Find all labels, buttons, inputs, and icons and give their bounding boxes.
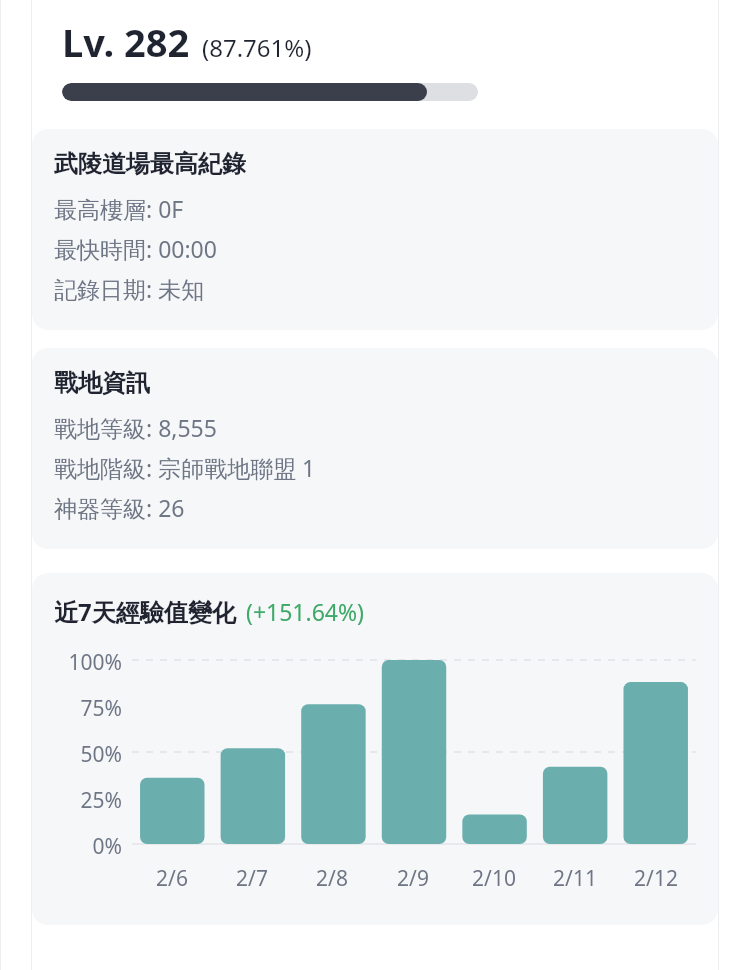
- staticText: 2/12: [634, 864, 678, 893]
- staticText: 100%: [68, 648, 122, 672]
- staticText: 2/8: [316, 864, 348, 893]
- staticText: 2/11: [553, 864, 597, 893]
- staticText: 2/10: [472, 864, 516, 893]
- staticText: (+151.64%): [246, 596, 365, 627]
- staticText: 武陵道場最高紀錄: [54, 149, 246, 179]
- staticText: Lv. 282: [62, 16, 190, 68]
- staticText: 記錄日期: 未知: [54, 273, 205, 304]
- button[interactable]: 近7天經驗值變化: [32, 573, 718, 925]
- staticText: 近7天經驗值變化: [54, 595, 236, 628]
- staticText: 最快時間: 00:00: [54, 233, 217, 264]
- staticText: 戰地等級: 8,555: [54, 412, 217, 443]
- button[interactable]: 戰地資訊: [32, 348, 718, 549]
- staticText: 2/6: [156, 864, 188, 893]
- staticText: 50%: [80, 740, 122, 764]
- staticText: 0%: [92, 832, 122, 856]
- staticText: (87.761%): [202, 31, 312, 64]
- staticText: 2/9: [397, 864, 429, 893]
- staticText: 25%: [80, 786, 122, 810]
- staticText: 最高樓層: 0F: [54, 193, 184, 224]
- staticText: 2/7: [236, 864, 268, 893]
- staticText: 神器等級: 26: [54, 492, 185, 523]
- staticText: 戰地階級: 宗師戰地聯盟 1: [54, 452, 316, 483]
- staticText: 戰地資訊: [54, 368, 150, 398]
- button[interactable]: 武陵道場最高紀錄: [32, 129, 718, 330]
- staticText: 75%: [80, 694, 122, 718]
